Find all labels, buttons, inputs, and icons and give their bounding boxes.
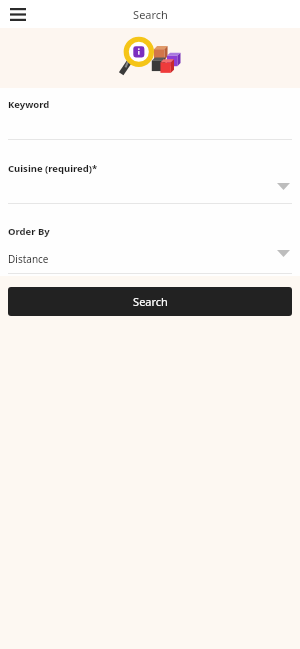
- button[interactable]: Open navigation menu: [4, 0, 32, 28]
- button[interactable]: Order By: [0, 204, 300, 273]
- button[interactable]: Search: [8, 287, 292, 316]
- staticText: Search: [133, 294, 168, 309]
- staticText: Order By: [8, 225, 50, 238]
- staticText: Keyword: [8, 98, 50, 111]
- staticText: Cuisine (required)*: [8, 162, 98, 175]
- button[interactable]: Cuisine (required)*: [0, 140, 300, 203]
- staticText: Distance: [8, 252, 49, 266]
- button[interactable]: Keyword: [0, 88, 300, 139]
- staticText: Search: [133, 7, 168, 22]
